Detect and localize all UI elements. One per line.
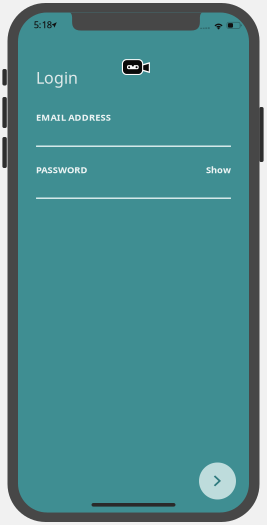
button[interactable]: Show	[206, 163, 231, 176]
staticText: Login	[36, 67, 78, 88]
staticText: Show	[206, 163, 231, 176]
staticText: EMAIL ADDRESS	[36, 111, 111, 123]
button[interactable]: Continue	[199, 462, 236, 499]
staticText: PASSWORD	[36, 163, 87, 176]
staticText: 5:18	[34, 18, 52, 31]
